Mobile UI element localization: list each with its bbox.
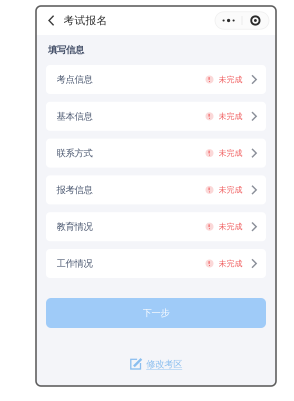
staticText: 未完成 [218,222,242,232]
staticText: 基本信息 [56,111,92,122]
staticText: 考点信息 [56,74,92,85]
button[interactable]: 工作情况 [46,249,266,278]
button[interactable]: 基本信息 [46,102,266,131]
staticText: 填写信息 [48,44,84,56]
staticText: 未完成 [218,148,242,158]
button[interactable]: 报考信息 [46,175,266,204]
button[interactable]: 修改考区 [130,358,182,370]
staticText: 修改考区 [146,358,182,370]
staticText: 报考信息 [56,184,92,196]
staticText: 考试报名 [64,14,108,27]
button[interactable]: 联系方式 [46,139,266,168]
staticText: 联系方式 [56,147,92,159]
button[interactable]: 更多 [216,12,242,29]
button[interactable]: 下一步 [46,298,266,328]
button[interactable]: 关闭 [242,12,268,29]
staticText: 未完成 [218,75,242,84]
staticText: 下一步 [142,307,169,319]
button[interactable]: 返回 [36,15,64,26]
staticText: 未完成 [218,185,242,195]
staticText: 未完成 [218,259,242,268]
staticText: 未完成 [218,111,242,121]
button[interactable]: 教育情况 [46,212,266,241]
staticText: 工作情况 [56,258,92,269]
button[interactable]: 考点信息 [46,65,266,94]
staticText: 教育情况 [56,221,92,232]
